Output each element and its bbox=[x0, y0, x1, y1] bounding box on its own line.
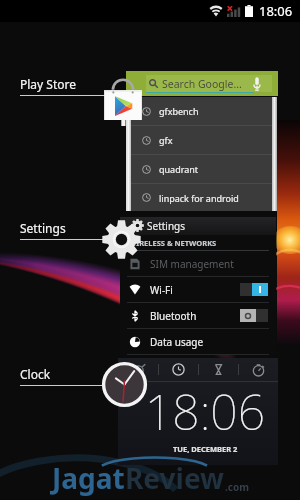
staticText: Data usage bbox=[150, 335, 204, 349]
staticText: Clock bbox=[20, 366, 51, 382]
button[interactable]: SIM management bbox=[129, 251, 268, 276]
staticText: TUE, DECEMBER 2 bbox=[173, 444, 238, 454]
staticText: 18:06 bbox=[145, 379, 266, 444]
staticText: Bluetooth bbox=[150, 309, 197, 323]
staticText: SIM management bbox=[150, 257, 234, 271]
staticText: Search Google... bbox=[162, 77, 242, 91]
button[interactable]: Clock bbox=[101, 361, 148, 408]
button[interactable]: gfx bbox=[142, 126, 272, 154]
staticText: WIRELESS & NETWORKS bbox=[129, 238, 217, 248]
button[interactable]: Search Google... bbox=[126, 71, 278, 96]
staticText: Settings bbox=[20, 220, 66, 236]
staticText: gfx bbox=[159, 134, 173, 146]
button[interactable]: quadrant bbox=[142, 155, 272, 183]
button[interactable]: Voice search bbox=[253, 77, 261, 91]
staticText: Play Store bbox=[20, 76, 76, 92]
button[interactable] bbox=[240, 309, 268, 322]
button[interactable]: gfxbench bbox=[142, 97, 272, 125]
button[interactable]: Alarm bbox=[118, 358, 158, 381]
button[interactable]: Clock bbox=[159, 358, 198, 381]
staticText: gfxbench bbox=[159, 105, 199, 117]
staticText: Settings bbox=[147, 219, 186, 233]
button[interactable]: Play Store bbox=[102, 78, 144, 126]
staticText: Wi-Fi bbox=[150, 283, 173, 297]
button[interactable]: Bluetooth bbox=[129, 303, 268, 328]
button[interactable]: Wi-Fi bbox=[129, 277, 268, 302]
staticText: 18:06 bbox=[259, 2, 293, 20]
button[interactable]: linpack for android bbox=[142, 184, 272, 211]
button[interactable]: Stopwatch bbox=[239, 358, 278, 381]
staticText: Jagat bbox=[52, 459, 125, 497]
button[interactable]: Timer bbox=[199, 358, 238, 381]
staticText: .com bbox=[225, 480, 249, 494]
button[interactable]: Settings bbox=[102, 220, 141, 259]
staticText: linpack for android bbox=[159, 192, 239, 204]
staticText: Review bbox=[125, 459, 225, 497]
button[interactable]: Data usage bbox=[129, 329, 268, 354]
staticText: quadrant bbox=[159, 163, 199, 175]
button[interactable] bbox=[240, 283, 268, 296]
